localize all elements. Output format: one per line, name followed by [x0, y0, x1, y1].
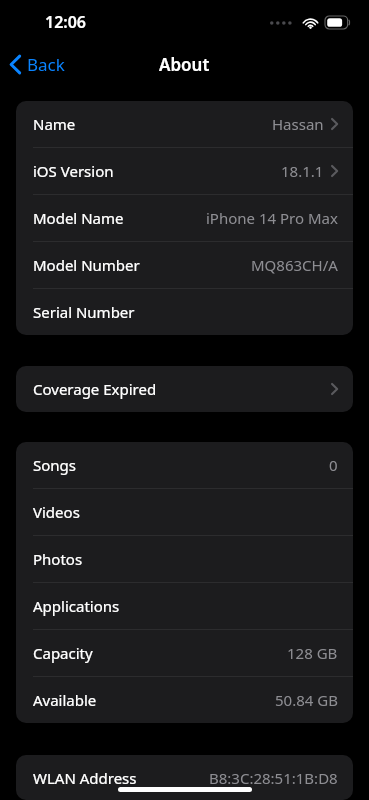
staticText: Model Name: [33, 208, 124, 228]
staticText: 128 GB: [287, 643, 338, 663]
button[interactable]: Model Name: [16, 195, 353, 241]
button[interactable]: Songs: [16, 442, 353, 488]
staticText: 0: [329, 455, 338, 475]
button[interactable]: Available: [16, 677, 353, 723]
staticText: Songs: [33, 455, 76, 475]
button[interactable]: Coverage Expired: [16, 366, 353, 412]
button[interactable]: Serial Number: [16, 289, 353, 335]
staticText: 12:06: [45, 11, 87, 33]
staticText: iOS Version: [33, 161, 114, 181]
button[interactable]: Photos: [16, 536, 353, 582]
staticText: Capacity: [33, 643, 93, 663]
staticText: B8:3C:28:51:1B:D8: [209, 768, 338, 788]
button[interactable]: Back: [0, 49, 73, 80]
staticText: Model Number: [33, 255, 140, 275]
staticText: Back: [27, 53, 65, 76]
staticText: 18.1.1: [281, 161, 324, 181]
staticText: WLAN Address: [33, 768, 137, 788]
staticText: Serial Number: [33, 302, 135, 322]
button[interactable]: WLAN Address: [16, 755, 353, 800]
button[interactable]: Model Number: [16, 242, 353, 288]
button[interactable]: Applications: [16, 583, 353, 629]
staticText: iPhone 14 Pro Max: [206, 208, 338, 228]
button[interactable]: Name: [16, 101, 353, 147]
staticText: Name: [33, 114, 76, 134]
staticText: Applications: [33, 596, 120, 616]
staticText: 50.84 GB: [275, 690, 338, 710]
staticText: Hassan: [272, 114, 324, 134]
button[interactable]: iOS Version: [16, 148, 353, 194]
staticText: Coverage Expired: [33, 379, 157, 399]
staticText: Videos: [33, 502, 80, 522]
staticText: About: [159, 53, 210, 76]
button[interactable]: Capacity: [16, 630, 353, 676]
staticText: Available: [33, 690, 97, 710]
staticText: MQ863CH/A: [251, 255, 338, 275]
staticText: Photos: [33, 549, 83, 569]
button[interactable]: Videos: [16, 489, 353, 535]
